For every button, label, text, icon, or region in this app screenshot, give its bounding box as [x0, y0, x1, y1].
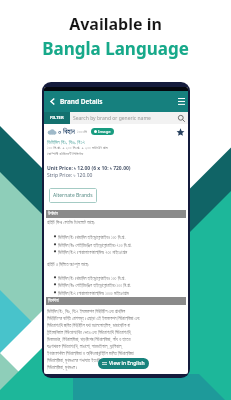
- staticText: প্রতিটি ফিল্ম কোটেড ট্যাবলেটে আছে:: [47, 219, 96, 225]
- button[interactable]: Search by brand or generic name: [70, 112, 188, 124]
- staticText: Available in: [69, 13, 162, 35]
- staticText: যন্ত্রণাদায়ক নিউরোপ্যাথি, লাম্বাগো, সার…: [47, 343, 123, 349]
- staticText: Unit Price: ৳ 12.00 (6 x 10: ৳ 720.00): [47, 165, 131, 172]
- staticText: ভিটামিন বি১ (থায়ামিন হাইড্রোক্লোরাইড) ১…: [58, 275, 126, 281]
- staticText: Bangla Language: [42, 37, 189, 60]
- staticText: কোম্পানী র‍্যাডিয়েন্ট লিমিটেড: [47, 151, 84, 157]
- staticText: Strip Price: ৳ 120.00: [47, 172, 93, 179]
- staticText: নিউরালজিয়া, মুখমণ্ডলের পক্ষাঘাত ইত্যাদি…: [47, 357, 128, 363]
- staticText: ০ বিহান: [58, 127, 75, 137]
- staticText: Image: [98, 129, 111, 135]
- staticText: ভিটামিন বি১২ (সায়ানোকোবালামিন) ১০০০ মাই…: [58, 290, 129, 296]
- button[interactable]: Alternate Brands: [49, 188, 97, 203]
- button[interactable]: Menu: [174, 91, 188, 112]
- staticText: ১০০০মি: [77, 130, 88, 134]
- button[interactable]: Back: [44, 91, 188, 112]
- staticText: FILTER: [50, 115, 64, 121]
- staticText: নিউরালজিয়া, মুখমণ্ডল।: [47, 364, 77, 370]
- staticText: ইন্টারকোস্টাল নিউরালজিয়া ও অস্টিওআর্থ্র…: [47, 350, 134, 356]
- button[interactable]: Back: [44, 91, 60, 112]
- staticText: ভিটামিন বি১২ (সায়ানোকোবালামিন) ২০০ মাইক…: [58, 249, 128, 255]
- staticText: ভিটামিন বি১ (থায়ামিন হাইড্রোক্লোরাইড) ১…: [58, 234, 126, 240]
- staticText: Search by brand or generic name: [73, 115, 151, 122]
- staticText: View in English: [109, 360, 145, 367]
- staticText: নির্দেশনা: [48, 299, 59, 303]
- button[interactable]: Image: [91, 128, 114, 135]
- button[interactable]: View in English: [98, 358, 149, 369]
- staticText: ডিজঅর্ডার, নিউরালজিয়া, ঘাড়বিশেষ নিউরাল…: [47, 336, 131, 342]
- button[interactable]: ০ বিহান: [47, 126, 185, 137]
- staticText: Brand Details: [60, 97, 103, 106]
- staticText: নিউরিটিসের ঘাটতি রোগসমূহ। এছাড়া এই ইনজে…: [47, 315, 140, 321]
- staticText: প্রতিটি ৫ মিলিতে অ্যাম্পুল আছে:: [47, 261, 90, 267]
- staticText: ভিটামিন বি১, বি৬, বি১২: [47, 138, 86, 145]
- button[interactable]: Favourite: [175, 127, 185, 137]
- staticText: নিউরোপ্যাথি জনিত নিউরিটিস যথা অ্যালকোহলি…: [47, 322, 131, 328]
- staticText: ভিটামিন বি৬ (পাইরিডক্সিন হাইড্রোক্লোরাইড…: [58, 282, 132, 288]
- staticText: ১০০ মি.গ্রা. + ২০০ মি.গ্রা. + ২০০ মাইক্র…: [47, 145, 108, 151]
- staticText: উপাদান: [48, 212, 58, 216]
- staticText: ট্রাইজেমিনাল নিউরোপ্যাথির ক্ষেত্রে এবং ন…: [47, 329, 132, 335]
- staticText: ভিটামিন বি১, বি৬, বি১২ ইনজেকশন নিউরিটিস …: [47, 308, 126, 314]
- staticText: ভিটামিন বি৬ (পাইরিডক্সিন হাইড্রোক্লোরাইড…: [58, 242, 132, 248]
- button[interactable]: FILTER: [44, 112, 70, 124]
- staticText: Alternate Brands: [53, 192, 93, 199]
